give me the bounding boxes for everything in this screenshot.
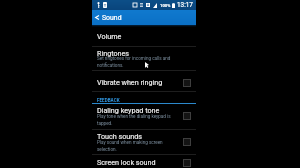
staticText: 13:17 <box>177 1 193 9</box>
staticText: Volume <box>97 32 122 40</box>
staticText: Screen lock sound <box>97 158 156 166</box>
button[interactable] <box>92 71 196 92</box>
staticText: Set ringtones for incoming calls and not… <box>97 56 176 68</box>
other: Back <box>95 15 99 20</box>
button[interactable] <box>92 105 196 129</box>
button[interactable] <box>92 10 196 25</box>
staticText: Ringtones <box>97 49 130 57</box>
other: Toggle <box>183 112 191 120</box>
staticText: 100% <box>160 3 171 8</box>
staticText: Vibrate when ringing <box>97 78 163 86</box>
staticText: Touch sounds <box>97 132 143 140</box>
other: Toggle <box>183 79 191 87</box>
button[interactable] <box>92 25 196 46</box>
other: Toggle <box>183 159 191 167</box>
button[interactable] <box>92 47 196 70</box>
other: Toggle <box>183 138 191 146</box>
staticText: FEEDBACK <box>97 98 120 103</box>
button[interactable] <box>92 155 196 168</box>
staticText: Play sound when making screen selection. <box>97 140 176 152</box>
staticText: Sound <box>102 14 122 22</box>
staticText: Dialing keypad tone <box>97 106 160 114</box>
button[interactable] <box>92 130 196 155</box>
staticText: Play tone when the dialing keypad is tap… <box>97 114 176 126</box>
